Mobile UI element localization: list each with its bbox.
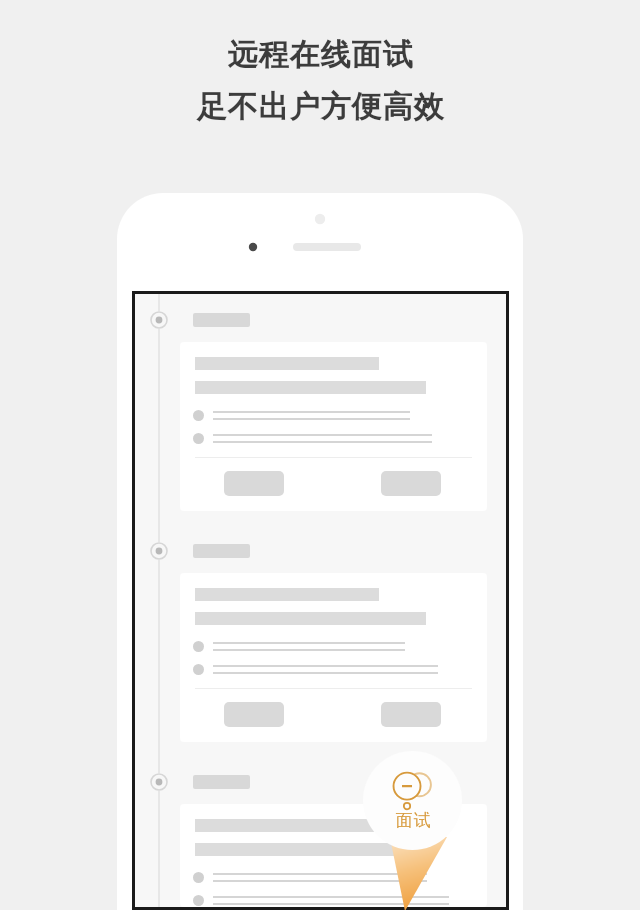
button[interactable] bbox=[224, 702, 284, 727]
button[interactable] bbox=[180, 573, 487, 742]
button[interactable]: 面试 bbox=[363, 751, 473, 910]
button[interactable] bbox=[224, 471, 284, 496]
button[interactable] bbox=[381, 471, 441, 496]
staticText: 远程在线面试 bbox=[227, 36, 413, 74]
staticText: 足不出户方便高效 bbox=[196, 88, 444, 126]
button[interactable] bbox=[381, 702, 441, 727]
button[interactable] bbox=[180, 342, 487, 511]
staticText: 面试 bbox=[395, 810, 431, 831]
button[interactable] bbox=[180, 804, 487, 907]
